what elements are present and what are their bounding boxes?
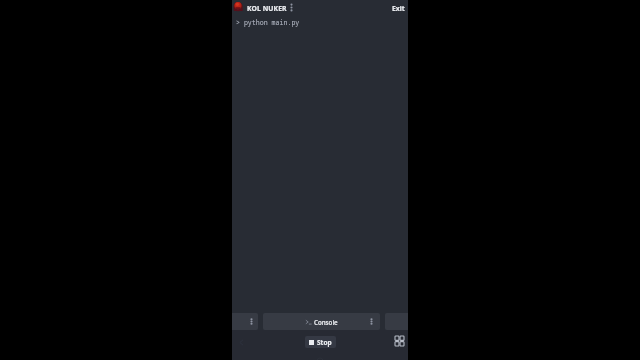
staticText: > python main.py	[236, 18, 300, 27]
button[interactable]: Recents	[391, 333, 407, 349]
button[interactable]: Console options	[363, 313, 380, 330]
button[interactable]: More options	[287, 3, 297, 13]
staticText: Exit	[392, 4, 405, 13]
staticText: Console	[314, 318, 338, 326]
staticText: KOL NUKER	[247, 4, 287, 13]
button[interactable]: Exit	[389, 2, 408, 15]
button[interactable]: Stop	[305, 336, 336, 348]
staticText: Stop	[317, 338, 332, 347]
button[interactable]: Console	[263, 313, 380, 330]
button[interactable]: Menu	[232, 313, 258, 330]
